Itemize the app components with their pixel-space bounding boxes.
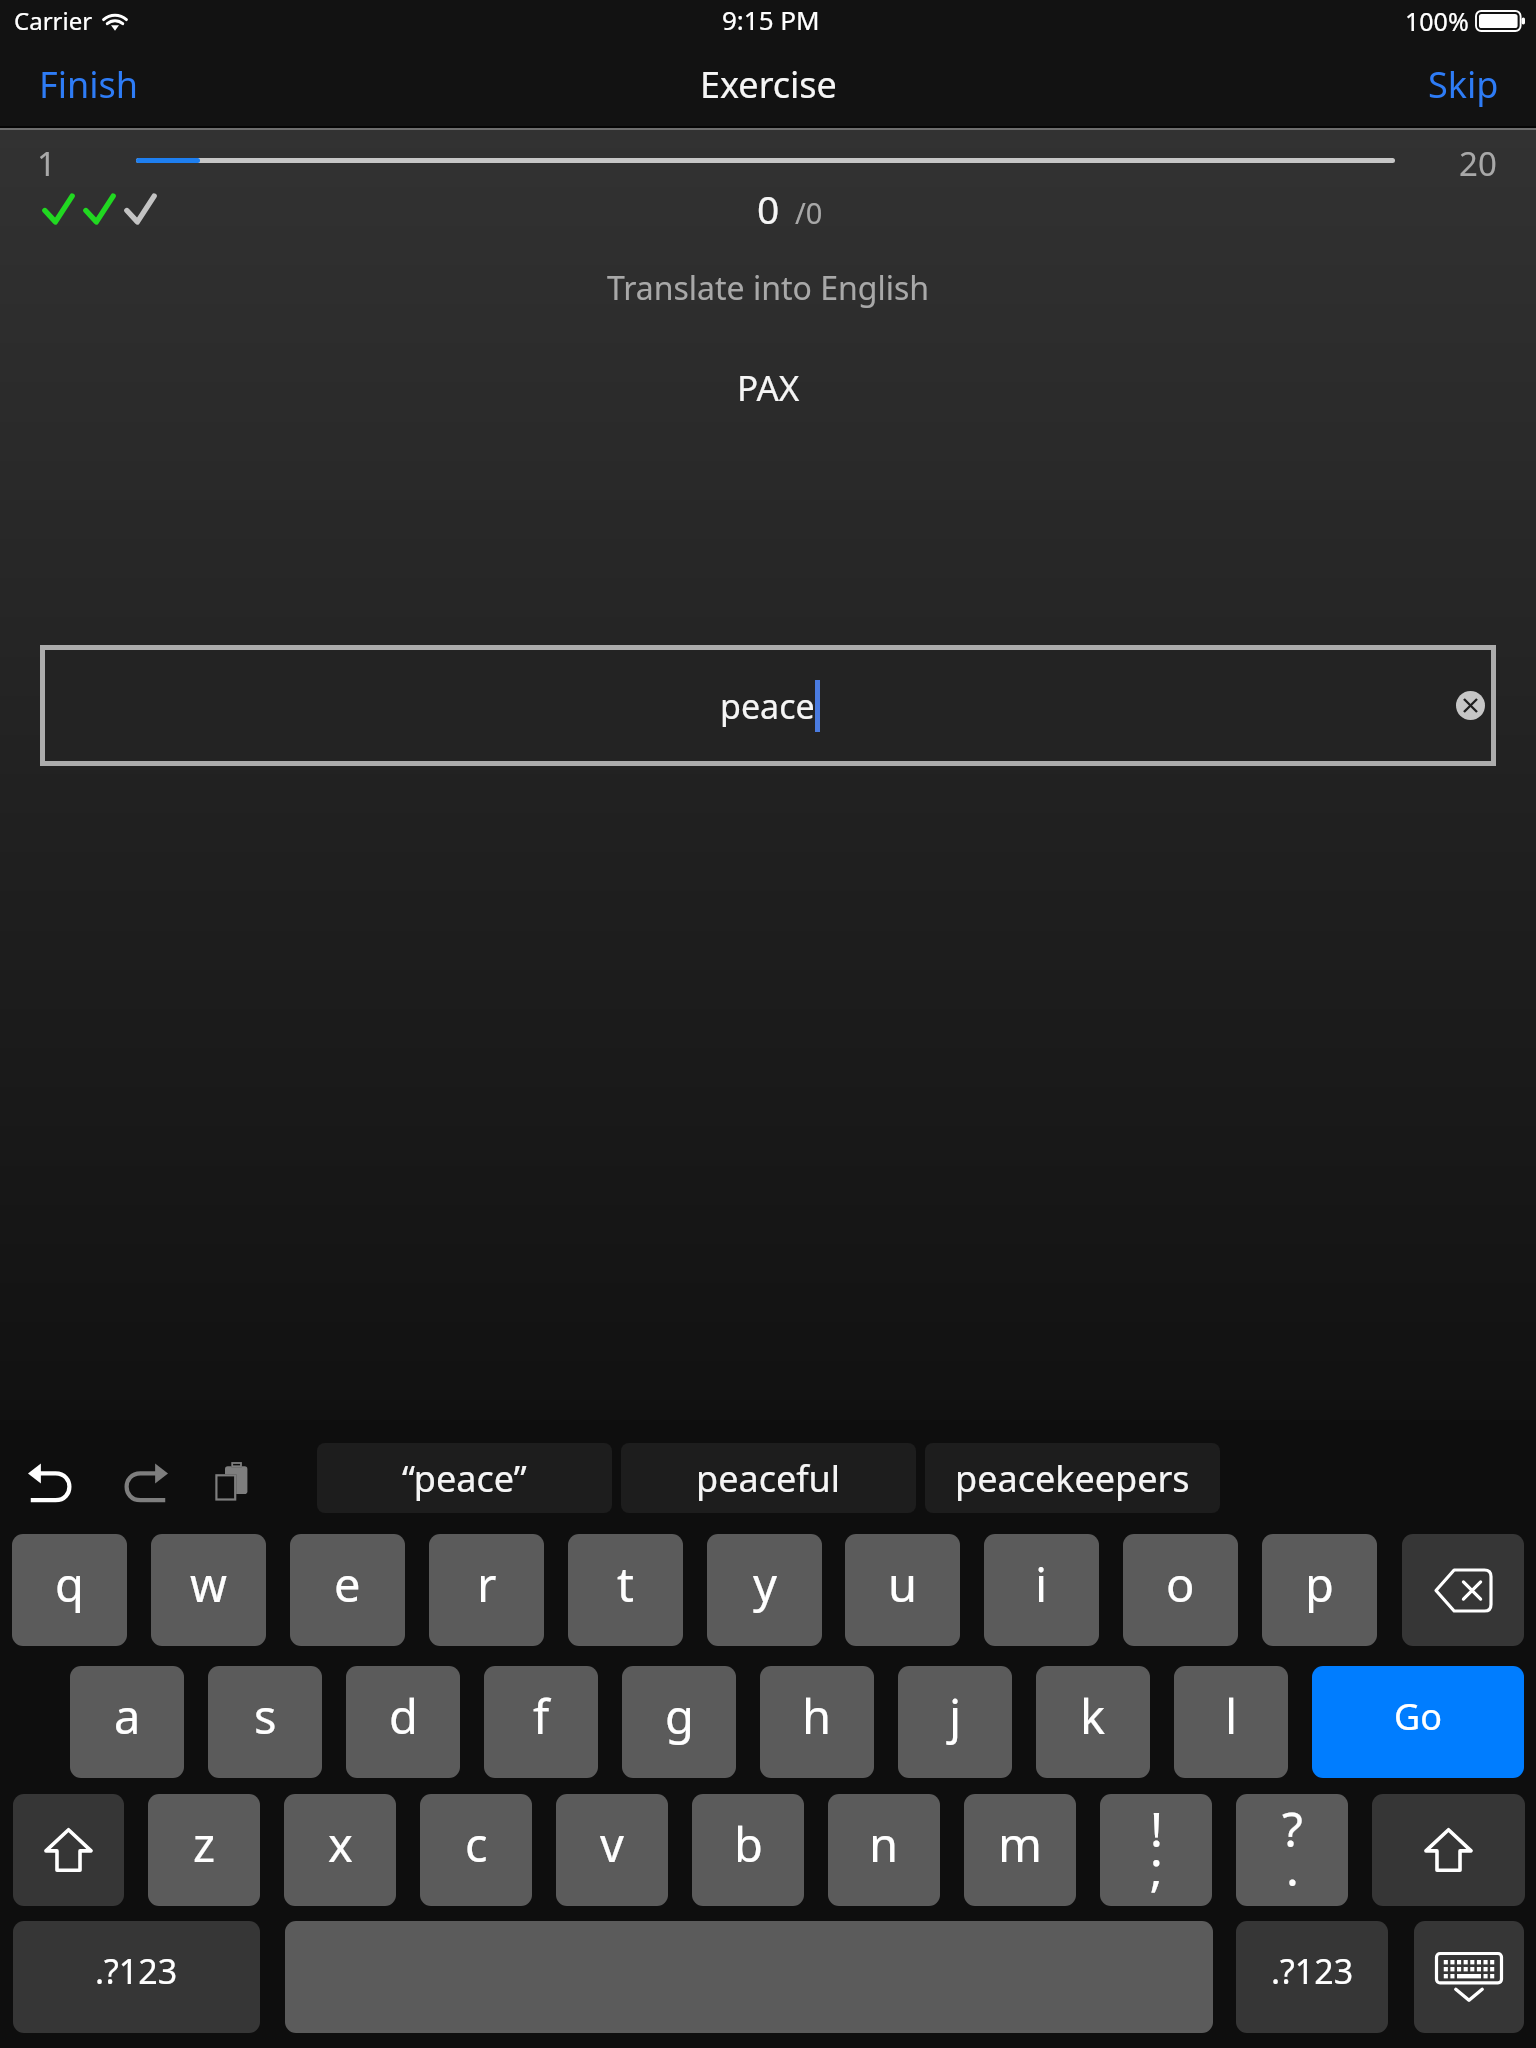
staticText: .?123 — [1271, 1948, 1354, 1994]
staticText: /0 — [795, 193, 823, 232]
staticText: Carrier — [14, 4, 93, 37]
button[interactable]: .?123 — [13, 1921, 260, 2033]
staticText: peaceful — [696, 1454, 841, 1503]
staticText: 100% — [1405, 4, 1469, 38]
staticText: o — [1166, 1552, 1195, 1616]
button[interactable]: a — [70, 1666, 184, 1778]
staticText: t — [617, 1552, 634, 1616]
button[interactable]: q — [12, 1534, 127, 1646]
button[interactable]: x — [284, 1794, 396, 1906]
button[interactable]: ? — [1236, 1794, 1348, 1906]
button[interactable]: j — [898, 1666, 1012, 1778]
staticText: peace — [720, 683, 815, 729]
button[interactable]: peace — [45, 650, 1491, 761]
staticText: a — [114, 1684, 141, 1748]
button[interactable]: t — [568, 1534, 683, 1646]
button[interactable]: peaceful — [621, 1443, 916, 1513]
staticText: v — [600, 1812, 624, 1876]
staticText: Finish — [39, 60, 139, 109]
button[interactable]: Shift — [1372, 1794, 1525, 1906]
button[interactable]: l — [1174, 1666, 1288, 1778]
staticText: 0 — [757, 182, 780, 235]
staticText: r — [477, 1552, 497, 1616]
staticText: c — [465, 1812, 488, 1876]
button[interactable]: Go — [1312, 1666, 1524, 1778]
button[interactable]: .?123 — [1236, 1921, 1388, 2033]
staticText: “peace” — [402, 1454, 527, 1503]
staticText: d — [389, 1684, 418, 1748]
staticText: w — [190, 1552, 227, 1616]
button[interactable]: Hide keyboard — [1414, 1921, 1524, 2033]
staticText: h — [802, 1684, 832, 1748]
button[interactable]: w — [151, 1534, 266, 1646]
button[interactable]: Skip — [1388, 44, 1536, 125]
button[interactable]: y — [707, 1534, 822, 1646]
button[interactable]: “peace” — [317, 1443, 612, 1513]
button[interactable]: v — [556, 1794, 668, 1906]
staticText: Skip — [1428, 60, 1499, 109]
staticText: k — [1080, 1684, 1106, 1748]
button[interactable]: o — [1123, 1534, 1238, 1646]
staticText: g — [665, 1684, 694, 1748]
staticText: x — [328, 1812, 353, 1876]
staticText: z — [193, 1812, 216, 1876]
staticText: i — [1035, 1552, 1048, 1616]
button[interactable]: Clear text — [1456, 691, 1485, 720]
staticText: f — [533, 1684, 550, 1748]
staticText: n — [869, 1812, 899, 1876]
staticText: 1 — [37, 141, 56, 186]
button[interactable]: c — [420, 1794, 532, 1906]
button[interactable]: Backspace — [1402, 1534, 1524, 1646]
staticText: e — [334, 1552, 361, 1616]
button[interactable]: Shift — [13, 1794, 124, 1906]
staticText: 9:15 PM — [722, 2, 820, 37]
button[interactable]: p — [1262, 1534, 1377, 1646]
button[interactable]: s — [208, 1666, 322, 1778]
button[interactable]: Finish — [0, 44, 179, 125]
button[interactable]: z — [148, 1794, 260, 1906]
button[interactable]: Redo — [110, 1448, 180, 1518]
staticText: ! — [1150, 1796, 1163, 1861]
staticText: Translate into English — [607, 266, 930, 310]
staticText: y — [753, 1552, 777, 1616]
staticText: q — [55, 1552, 84, 1616]
staticText: PAX — [737, 364, 800, 412]
button[interactable]: Paste — [198, 1448, 268, 1518]
button[interactable]: ! — [1100, 1794, 1212, 1906]
staticText: . — [1286, 1835, 1299, 1900]
button[interactable]: k — [1036, 1666, 1150, 1778]
staticText: j — [949, 1684, 962, 1748]
staticText: s — [254, 1684, 277, 1748]
button[interactable]: m — [964, 1794, 1076, 1906]
button[interactable]: i — [984, 1534, 1099, 1646]
staticText: peacekeepers — [955, 1454, 1190, 1503]
button[interactable]: h — [760, 1666, 874, 1778]
staticText: l — [1225, 1684, 1238, 1748]
button[interactable]: f — [484, 1666, 598, 1778]
button[interactable]: peacekeepers — [925, 1443, 1220, 1513]
staticText: Exercise — [700, 60, 837, 109]
button[interactable]: g — [622, 1666, 736, 1778]
staticText: u — [888, 1552, 918, 1616]
staticText: m — [998, 1812, 1042, 1876]
button[interactable]: u — [845, 1534, 960, 1646]
button[interactable]: d — [346, 1666, 460, 1778]
button[interactable]: e — [290, 1534, 405, 1646]
button[interactable]: n — [828, 1794, 940, 1906]
button[interactable]: b — [692, 1794, 804, 1906]
button[interactable]: Undo — [16, 1448, 86, 1518]
staticText: ; — [1150, 1835, 1163, 1900]
staticText: p — [1305, 1552, 1334, 1616]
staticText: ? — [1282, 1796, 1303, 1861]
staticText: 20 — [1459, 141, 1497, 186]
staticText: .?123 — [95, 1948, 178, 1994]
button[interactable]: r — [429, 1534, 544, 1646]
staticText: Go — [1394, 1692, 1442, 1741]
staticText: b — [734, 1812, 763, 1876]
